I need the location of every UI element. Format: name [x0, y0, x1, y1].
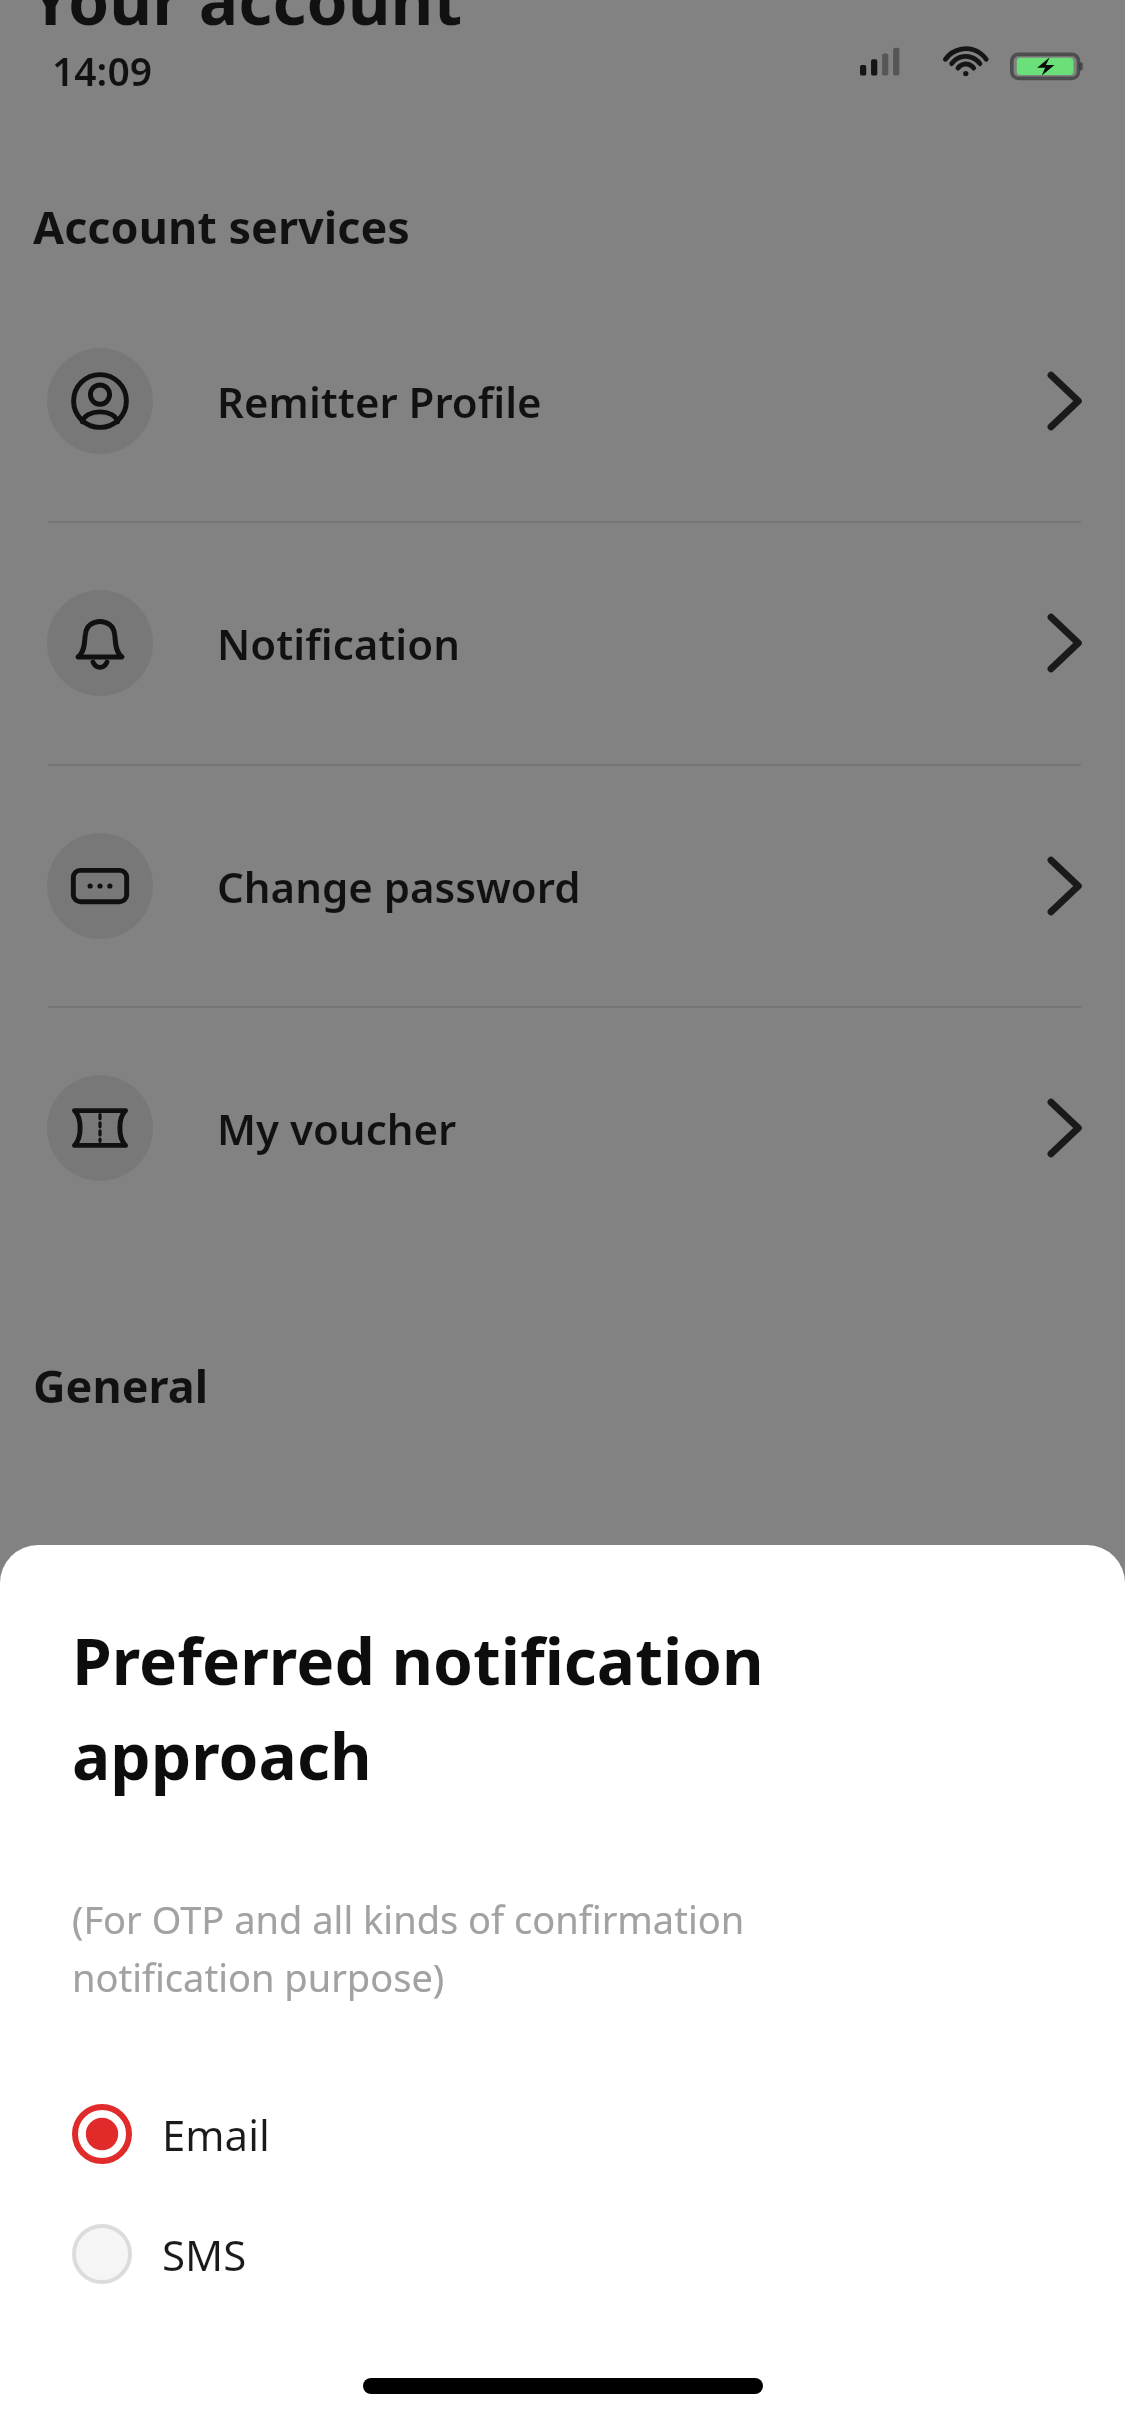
staticText: Your account: [30, 0, 463, 44]
staticText: Remitter Profile: [217, 373, 542, 430]
staticText: Preferred notification approach: [72, 1617, 992, 1799]
staticText: 14:09: [52, 44, 152, 97]
staticText: General: [33, 1355, 209, 1416]
button[interactable]: My voucher: [0, 1028, 1125, 1228]
button[interactable]: Notification: [0, 543, 1125, 743]
staticText: SMS: [162, 2226, 247, 2283]
staticText: My voucher: [217, 1100, 457, 1157]
button[interactable]: Email: [0, 2075, 1125, 2193]
button[interactable]: SMS: [0, 2195, 1125, 2313]
staticText: Change password: [217, 858, 581, 915]
staticText: Account services: [33, 196, 410, 257]
button[interactable]: Remitter Profile: [0, 301, 1125, 501]
staticText: Email: [162, 2106, 270, 2163]
staticText: Notification: [217, 615, 460, 672]
staticText: (For OTP and all kinds of confirmation n…: [72, 1893, 972, 2003]
button[interactable]: Change password: [0, 786, 1125, 986]
